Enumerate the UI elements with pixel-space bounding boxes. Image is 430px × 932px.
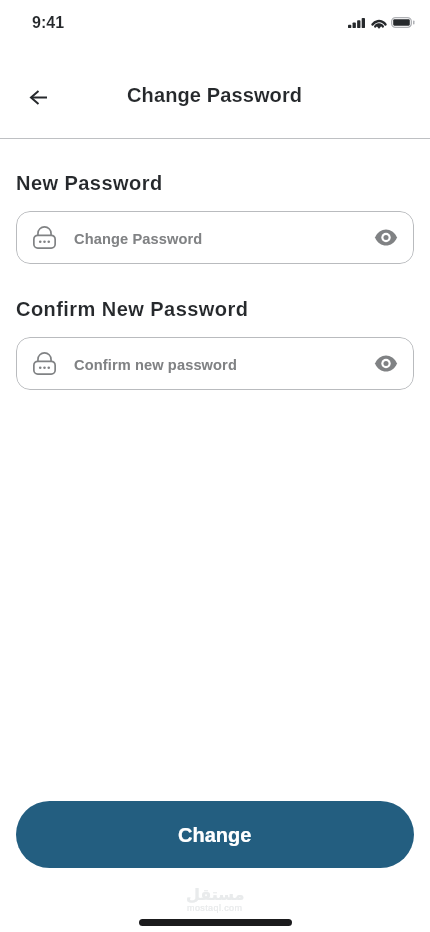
button[interactable]: Change Password (16, 211, 414, 264)
staticText: Change Password (74, 231, 203, 247)
button[interactable]: Back (21, 80, 55, 114)
staticText: 9:41 (32, 14, 65, 32)
staticText: Change (178, 824, 252, 846)
staticText: Change Password (127, 84, 303, 106)
staticText: Confirm New Password (16, 298, 249, 320)
button[interactable]: Confirm new password (16, 337, 414, 390)
staticText: New Password (16, 172, 163, 194)
staticText: Confirm new password (74, 357, 237, 373)
staticText: مستقل (186, 885, 245, 904)
button[interactable]: Show password (370, 221, 403, 254)
button[interactable]: Show password (370, 347, 403, 380)
staticText: mostaql.com (187, 903, 243, 913)
button[interactable]: Change (16, 801, 414, 868)
